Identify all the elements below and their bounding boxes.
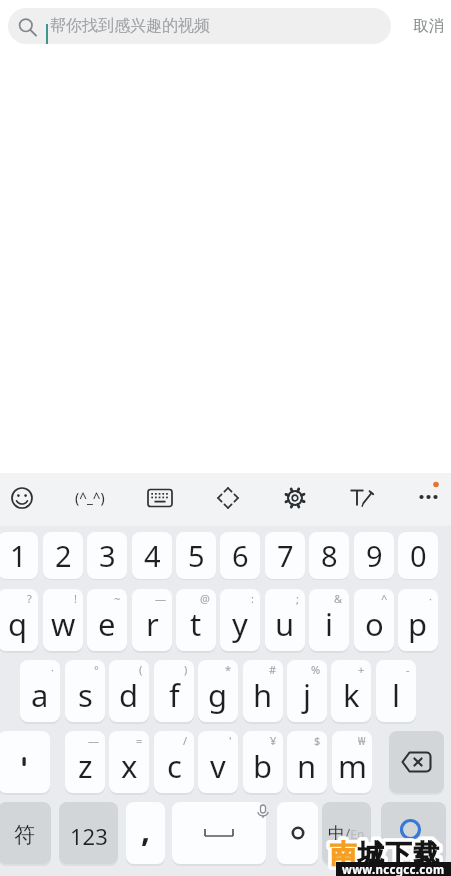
staticText: c (167, 745, 182, 787)
button[interactable]: 2 (43, 532, 83, 579)
staticText: ° (94, 662, 99, 677)
button[interactable]: i (309, 589, 349, 651)
button[interactable]: x (109, 731, 149, 793)
button[interactable]: p (398, 589, 438, 651)
button[interactable]: r (132, 589, 172, 651)
button[interactable]: 123 (59, 802, 118, 864)
button[interactable]: 5 (176, 532, 216, 579)
staticText: o (365, 603, 384, 645)
staticText: 7 (277, 536, 294, 575)
button[interactable]: b (243, 731, 283, 793)
button[interactable]: n (287, 731, 327, 793)
button[interactable] (389, 731, 444, 793)
button[interactable]: (^_^) (66, 474, 114, 522)
button[interactable]: u (265, 589, 305, 651)
button[interactable]: , (126, 802, 165, 864)
button[interactable]: z (65, 731, 105, 793)
staticText: · (429, 591, 432, 606)
staticText: www.nccgcc.com (342, 862, 445, 876)
staticText: 符 (14, 822, 35, 848)
button[interactable]: e (87, 589, 127, 651)
staticText: ₩ (358, 733, 366, 748)
button[interactable]: 中/En (322, 802, 371, 864)
button[interactable]: 8 (309, 532, 349, 579)
button[interactable] (273, 474, 317, 522)
button[interactable]: o (354, 589, 394, 651)
staticText: ( (139, 662, 143, 677)
staticText: # (269, 662, 277, 677)
button[interactable]: f (154, 660, 194, 722)
staticText: 4 (144, 536, 161, 575)
staticText: n (297, 745, 317, 787)
staticText: — (155, 591, 166, 606)
staticText: z (78, 745, 93, 787)
staticText: l (392, 674, 400, 716)
button[interactable]: h (243, 660, 283, 722)
button[interactable]: 0 (398, 532, 438, 579)
button[interactable]: j (287, 660, 327, 722)
button[interactable]: 帮你找到感兴趣的视频 (8, 8, 391, 44)
staticText: m (338, 745, 367, 787)
staticText: ! (74, 591, 77, 606)
button[interactable]: w (43, 589, 83, 651)
button[interactable] (381, 802, 446, 864)
button[interactable]: 3 (87, 532, 127, 579)
staticText: i (325, 603, 333, 645)
button[interactable] (0, 731, 50, 793)
button[interactable] (340, 474, 384, 522)
staticText: 8 (321, 536, 338, 575)
button[interactable]: v (198, 731, 238, 793)
button[interactable]: g (198, 660, 238, 722)
staticText: g (208, 674, 228, 716)
staticText: w (51, 603, 76, 645)
staticText: 6 (232, 536, 249, 575)
button[interactable]: 9 (354, 532, 394, 579)
staticText: e (98, 603, 116, 645)
staticText: — (88, 733, 99, 748)
button[interactable]: k (331, 660, 371, 722)
staticText: 取消 (413, 16, 444, 36)
button[interactable] (277, 802, 318, 864)
button[interactable]: 1 (0, 532, 38, 579)
button[interactable]: 取消 (403, 0, 451, 51)
staticText: = (136, 733, 143, 748)
button[interactable]: 4 (132, 532, 172, 579)
staticText: 2 (55, 536, 72, 575)
button[interactable]: s (65, 660, 105, 722)
staticText: , (141, 808, 151, 852)
staticText: @ (200, 591, 210, 606)
staticText: - (406, 662, 410, 677)
staticText: t (190, 603, 202, 645)
button[interactable] (206, 474, 250, 522)
button[interactable]: 7 (265, 532, 305, 579)
staticText: x (121, 745, 138, 787)
button[interactable]: q (0, 589, 38, 651)
button[interactable]: m (332, 731, 372, 793)
button[interactable]: t (176, 589, 216, 651)
staticText: 中/En (328, 823, 365, 844)
button[interactable]: 6 (220, 532, 260, 579)
button[interactable]: a (20, 660, 60, 722)
staticText: 9 (366, 536, 383, 575)
button[interactable]: 符 (0, 802, 51, 864)
staticText: (^_^) (75, 489, 105, 507)
staticText: & (334, 591, 343, 606)
staticText: r (146, 603, 159, 645)
button[interactable]: y (220, 589, 260, 651)
staticText: b (253, 745, 273, 787)
staticText: k (343, 674, 360, 716)
button[interactable] (0, 474, 44, 522)
staticText: + (358, 662, 365, 677)
staticText: 南城下载 (330, 838, 442, 871)
staticText: 帮你找到感兴趣的视频 (50, 16, 210, 36)
button[interactable]: d (109, 660, 149, 722)
staticText: j (303, 674, 311, 716)
button[interactable] (138, 474, 182, 522)
button[interactable]: c (154, 731, 194, 793)
staticText: · (51, 662, 54, 677)
staticText: y (232, 603, 248, 645)
staticText: 3 (99, 536, 116, 575)
button[interactable] (172, 802, 266, 864)
button[interactable]: l (376, 660, 416, 722)
button[interactable] (406, 474, 451, 522)
